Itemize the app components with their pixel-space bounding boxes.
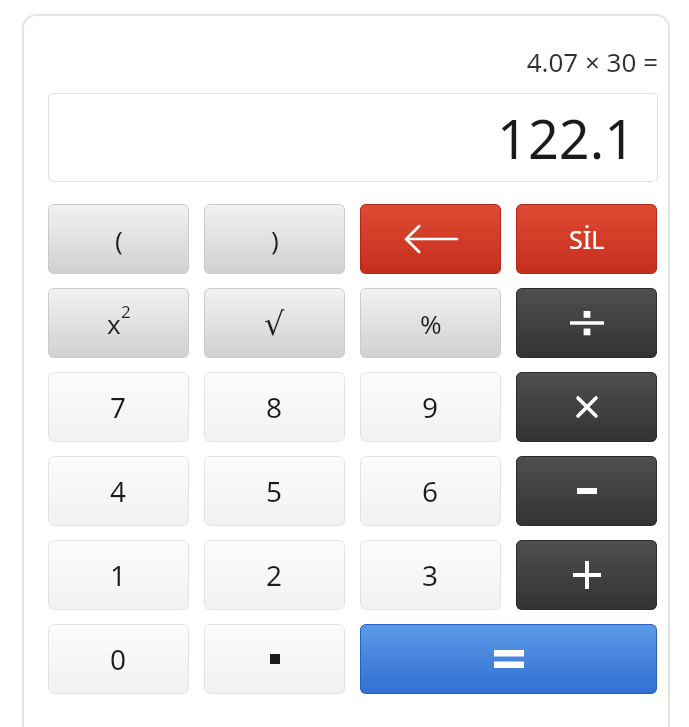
staticText: x (107, 306, 121, 341)
button[interactable]: √ (204, 288, 345, 358)
button[interactable]: ( (48, 204, 189, 274)
button[interactable]: 3 (360, 540, 501, 610)
button[interactable]: ) (204, 204, 345, 274)
staticText: 122.1 (497, 101, 636, 175)
button[interactable]: Equals (360, 624, 657, 694)
button[interactable]: 1 (48, 540, 189, 610)
button[interactable]: 9 (360, 372, 501, 442)
staticText: ( (115, 222, 123, 257)
staticText: 1 (110, 556, 127, 594)
button[interactable]: 5 (204, 456, 345, 526)
button[interactable]: 8 (204, 372, 345, 442)
staticText: 4.07 × 30 = (48, 44, 658, 79)
staticText: SİL (569, 222, 605, 256)
button[interactable]: 0 (48, 624, 189, 694)
button[interactable]: x squared (48, 288, 189, 358)
staticText: 4 (110, 472, 127, 510)
button[interactable]: 2 (204, 540, 345, 610)
staticText: 8 (266, 388, 283, 426)
button[interactable]: Divide (516, 288, 657, 358)
button[interactable]: Decimal point (204, 624, 345, 694)
button[interactable]: 4 (48, 456, 189, 526)
button[interactable]: Multiply (516, 372, 657, 442)
staticText: 7 (110, 388, 127, 426)
staticText: 3 (422, 556, 439, 594)
button[interactable]: Minus (516, 456, 657, 526)
button[interactable]: 7 (48, 372, 189, 442)
button[interactable]: Plus (516, 540, 657, 610)
button[interactable]: SİL (516, 204, 657, 274)
staticText: 5 (266, 472, 283, 510)
button[interactable]: Backspace (360, 204, 501, 274)
staticText: 2 (266, 556, 283, 594)
staticText: 2 (121, 300, 131, 323)
staticText: ) (271, 222, 279, 257)
staticText: 6 (422, 472, 439, 510)
button[interactable]: % (360, 288, 501, 358)
staticText: 0 (110, 640, 127, 678)
staticText: % (420, 306, 442, 341)
staticText: √ (264, 305, 285, 342)
button[interactable]: 6 (360, 456, 501, 526)
staticText: 9 (422, 388, 439, 426)
